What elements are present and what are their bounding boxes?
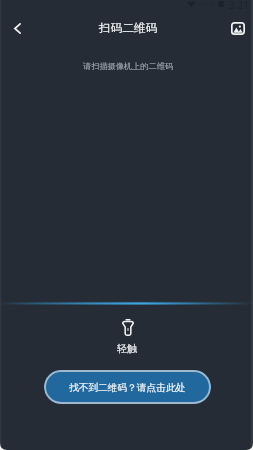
staticText: 找不到二维码？请点击此处 bbox=[69, 382, 186, 394]
button[interactable]: 轻触 bbox=[99, 313, 155, 360]
staticText: 轻触 bbox=[117, 342, 137, 355]
staticText: 扫码二维码 bbox=[99, 21, 158, 36]
button[interactable]: Back bbox=[0, 14, 34, 42]
staticText: 请扫描摄像机上的二维码 bbox=[83, 61, 174, 71]
button[interactable]: 找不到二维码？请点击此处 bbox=[44, 370, 211, 404]
button[interactable]: Choose QR code image from album bbox=[225, 14, 251, 42]
staticText: 3:21 bbox=[229, 0, 249, 9]
